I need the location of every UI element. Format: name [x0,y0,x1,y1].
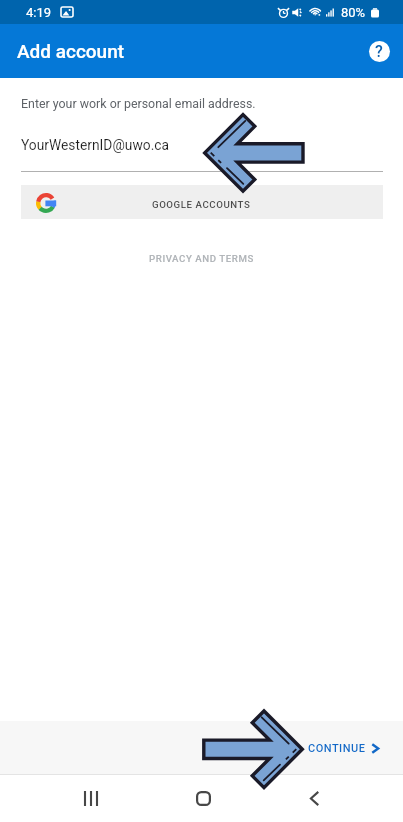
button[interactable]: Help [360,32,398,70]
button[interactable]: GOOGLE ACCOUNTS [21,185,383,219]
button[interactable]: Back [286,775,342,822]
staticText: ? [375,42,383,61]
staticText: 80% [341,5,366,20]
staticText: Add account [17,40,125,62]
button[interactable]: Recent apps [63,775,119,822]
staticText: Enter your work or personal email addres… [21,96,256,111]
button[interactable]: PRIVACY AND TERMS [139,249,264,268]
staticText: CONTINUE [308,742,366,755]
staticText: 4:19 [26,5,52,20]
button[interactable]: Home [175,775,231,822]
button[interactable]: CONTINUE [308,742,379,755]
staticText: GOOGLE ACCOUNTS [152,199,251,210]
staticText: YourWesternID@uwo.ca [21,137,169,153]
